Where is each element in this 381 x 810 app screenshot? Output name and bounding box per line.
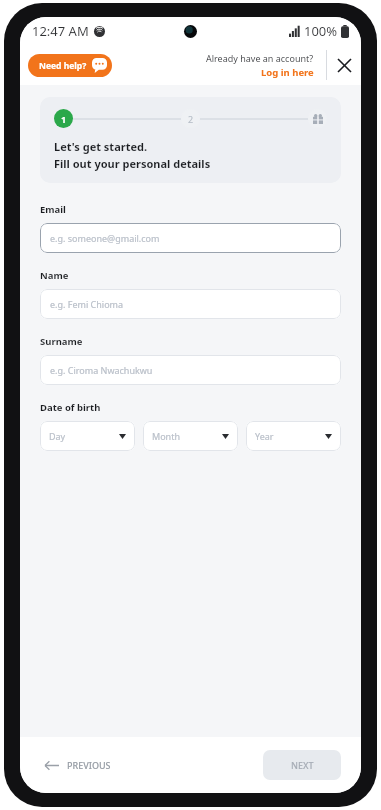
staticText: 1 xyxy=(61,113,67,125)
button[interactable]: NEXT xyxy=(263,750,341,780)
staticText: Year xyxy=(255,430,274,442)
staticText: Day xyxy=(49,430,66,442)
staticText: e.g. someone@gmail.com xyxy=(50,232,160,244)
button[interactable]: Month xyxy=(143,421,238,451)
staticText: Fill out your personal details xyxy=(54,156,211,171)
staticText: Surname xyxy=(40,335,83,348)
staticText: 100% xyxy=(304,22,338,40)
staticText: Name xyxy=(40,269,69,282)
button[interactable]: e.g. Ciroma Nwachukwu xyxy=(40,355,341,385)
button[interactable]: 1 xyxy=(54,109,73,128)
staticText: Already have an account? xyxy=(206,52,314,64)
staticText: Month xyxy=(152,430,180,442)
staticText: Need help? xyxy=(39,60,87,72)
button[interactable]: Need help? xyxy=(28,54,112,77)
button[interactable]: Already have an account? xyxy=(202,52,318,79)
staticText: PREVIOUS xyxy=(67,759,111,771)
staticText: e.g. Ciroma Nwachukwu xyxy=(50,364,153,376)
staticText: Email xyxy=(40,203,66,216)
button[interactable]: Day xyxy=(40,421,135,451)
button[interactable]: Year xyxy=(246,421,341,451)
button[interactable]: e.g. Femi Chioma xyxy=(40,289,341,319)
button[interactable]: e.g. someone@gmail.com xyxy=(40,223,341,253)
button[interactable]: 2 xyxy=(181,109,200,128)
button[interactable] xyxy=(308,109,327,128)
staticText: Date of birth xyxy=(40,401,101,414)
button[interactable]: PREVIOUS xyxy=(40,753,115,777)
staticText: e.g. Femi Chioma xyxy=(50,298,124,310)
button[interactable]: Close xyxy=(327,48,361,82)
staticText: 2 xyxy=(188,113,194,125)
staticText: Let's get started. xyxy=(54,139,148,154)
staticText: Log in here xyxy=(261,66,314,79)
staticText: NEXT xyxy=(291,759,314,771)
staticText: 12:47 AM xyxy=(32,22,89,40)
